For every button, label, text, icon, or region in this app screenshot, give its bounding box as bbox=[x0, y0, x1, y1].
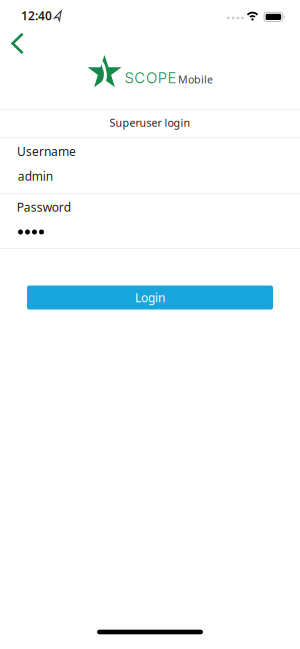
button[interactable]: Back bbox=[11, 32, 24, 54]
staticText: SCOPE bbox=[124, 69, 177, 87]
staticText: Username bbox=[17, 143, 76, 159]
button[interactable]: Username, admin bbox=[0, 138, 300, 193]
staticText: Login bbox=[135, 289, 165, 305]
staticText: Mobile bbox=[178, 72, 213, 86]
button[interactable]: Password bbox=[0, 194, 300, 249]
staticText: Password bbox=[17, 199, 71, 215]
staticText: Superuser login bbox=[109, 115, 190, 130]
staticText: 12:40 bbox=[21, 8, 52, 24]
button[interactable]: Login bbox=[27, 285, 273, 309]
staticText: admin bbox=[18, 168, 53, 184]
